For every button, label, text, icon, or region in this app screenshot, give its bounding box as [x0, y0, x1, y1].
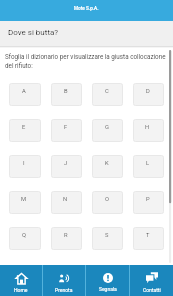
button[interactable]: M — [9, 191, 41, 214]
staticText: Sfoglia il dizionario per visualizzare l… — [5, 53, 169, 69]
button[interactable]: Segnala — [86, 265, 129, 296]
button[interactable]: S — [92, 227, 123, 250]
button[interactable]: P — [133, 191, 164, 214]
button[interactable]: O — [92, 191, 123, 214]
staticText: H — [145, 124, 150, 131]
staticText: A — [22, 88, 26, 95]
button[interactable]: L — [133, 155, 164, 178]
staticText: N — [63, 196, 68, 203]
staticText: Q — [22, 232, 26, 239]
button[interactable]: A — [9, 83, 41, 106]
button[interactable]: G — [92, 119, 123, 142]
other: Contatti — [146, 272, 158, 284]
staticText: E — [22, 124, 26, 131]
button[interactable]: Home — [0, 265, 42, 296]
other: Home — [16, 273, 27, 284]
button[interactable]: T — [133, 227, 164, 250]
button[interactable]: B — [51, 83, 82, 106]
button[interactable]: N — [51, 191, 82, 214]
staticText: Prenota — [55, 287, 73, 293]
staticText: Mote S.p.A. — [74, 6, 99, 12]
button[interactable]: Prenota — [43, 265, 85, 296]
staticText: Dove si butta? — [8, 28, 59, 37]
button[interactable]: I — [9, 155, 41, 178]
staticText: R — [64, 232, 68, 239]
button[interactable]: H — [133, 119, 164, 142]
staticText: P — [146, 196, 150, 203]
button[interactable]: Q — [9, 227, 41, 250]
staticText: F — [64, 124, 68, 131]
staticText: B — [64, 88, 68, 95]
staticText: J — [64, 160, 68, 167]
other: Prenota — [59, 273, 70, 284]
staticText: L — [146, 160, 150, 167]
button[interactable]: F — [51, 119, 82, 142]
staticText: T — [146, 232, 150, 239]
staticText: O — [105, 196, 109, 203]
button[interactable]: C — [92, 83, 123, 106]
staticText: Contatti — [143, 287, 161, 293]
staticText: C — [105, 88, 109, 95]
staticText: Home — [14, 287, 28, 293]
button[interactable]: E — [9, 119, 41, 142]
other: Segnala — [103, 273, 113, 283]
button[interactable]: R — [51, 227, 82, 250]
staticText: M — [21, 196, 27, 203]
button[interactable]: J — [51, 155, 82, 178]
staticText: I — [23, 160, 25, 167]
button[interactable]: Contatti — [130, 265, 173, 296]
staticText: S — [105, 232, 109, 239]
staticText: D — [146, 88, 150, 95]
staticText: K — [105, 160, 109, 167]
button[interactable]: K — [92, 155, 123, 178]
button[interactable]: D — [133, 83, 164, 106]
staticText: Segnala — [99, 286, 117, 292]
staticText: G — [105, 124, 109, 131]
